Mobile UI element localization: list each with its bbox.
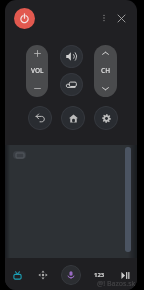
button[interactable]: Power: [14, 8, 35, 29]
button[interactable]: Volume up: [26, 45, 48, 62]
button[interactable]: Number keypad: [89, 265, 109, 285]
button[interactable]: Volume down: [26, 80, 48, 97]
button[interactable]: Channel up: [94, 45, 117, 62]
staticText: CH: [101, 66, 110, 75]
button[interactable]: Input source: [60, 73, 83, 96]
staticText: VOL: [31, 66, 44, 75]
button[interactable]: Channel down: [94, 80, 117, 97]
staticText: 123: [94, 271, 105, 279]
button[interactable]: Voice search: [61, 265, 81, 285]
button[interactable]: TV input: [7, 265, 27, 285]
button[interactable]: Settings: [94, 106, 118, 130]
button[interactable]: More options: [93, 7, 115, 29]
button[interactable]: Back: [28, 106, 52, 130]
staticText: @! Bazos.sk: [97, 279, 136, 289]
button[interactable]: [13, 151, 26, 159]
button[interactable]: Play pause: [115, 265, 135, 285]
button[interactable]: Mute: [60, 45, 83, 68]
button[interactable]: Home: [61, 106, 85, 130]
button[interactable]: Direction pad: [33, 265, 53, 285]
button[interactable]: Close: [110, 7, 132, 29]
